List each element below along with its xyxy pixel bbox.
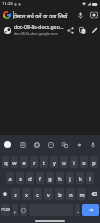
staticText: y: [53, 159, 56, 166]
staticText: o: [82, 159, 86, 166]
button[interactable]: x: [22, 188, 31, 200]
button[interactable]: w: [11, 156, 18, 168]
button[interactable]: m: [77, 188, 86, 200]
button[interactable]: Settings: [30, 135, 44, 154]
staticText: w: [12, 159, 17, 166]
button[interactable]: h: [56, 172, 64, 184]
button[interactable]: Stickers: [44, 135, 58, 154]
button[interactable]: i: [70, 156, 78, 168]
staticText: j: [69, 175, 71, 182]
staticText: e: [22, 159, 26, 166]
staticText: m: [79, 191, 85, 198]
button[interactable]: a: [6, 172, 14, 184]
staticText: ?123: [1, 207, 10, 213]
button[interactable]: y: [50, 156, 58, 168]
button[interactable]: Copy: [76, 24, 88, 36]
button[interactable]: Share: [64, 24, 76, 36]
button[interactable]: वेबपर सर्च करें या पता लिखें: [13, 8, 74, 22]
button[interactable]: Google Assistant: [0, 135, 15, 154]
button[interactable]: p: [90, 156, 98, 168]
button[interactable]: d: [26, 172, 34, 184]
button[interactable]: Edit: [88, 24, 100, 36]
staticText: n: [69, 191, 73, 198]
button[interactable]: Emoji: [20, 204, 27, 216]
staticText: b: [58, 191, 62, 198]
button[interactable]: Voice input: [86, 135, 100, 154]
button[interactable]: More options: [72, 135, 86, 154]
button[interactable]: Translate: [58, 135, 72, 154]
staticText: u: [62, 159, 66, 166]
staticText: .: [77, 207, 79, 214]
staticText: 11:23: [2, 1, 13, 7]
button[interactable]: c: [33, 188, 42, 200]
button[interactable]: k: [76, 172, 84, 184]
staticText: ,: [14, 207, 16, 214]
staticText: doc-08-8s-docs.google.com: [14, 31, 58, 36]
button[interactable]: Google Lens: [87, 8, 100, 22]
button[interactable]: z: [11, 188, 20, 200]
staticText: वेबपर सर्च करें या पता लिखें: [14, 12, 68, 19]
staticText: k: [79, 175, 82, 182]
button[interactable]: doc-08-8s-docs.goo...: [0, 22, 100, 38]
staticText: g: [48, 175, 52, 182]
button[interactable]: l: [86, 172, 94, 184]
staticText: t: [43, 159, 45, 166]
button[interactable]: .: [75, 204, 80, 216]
button[interactable]: Search: [82, 204, 99, 216]
button[interactable]: Backspace: [88, 188, 99, 200]
staticText: l: [89, 175, 91, 182]
staticText: d: [28, 175, 32, 182]
button[interactable]: n: [66, 188, 75, 200]
staticText: r: [33, 159, 36, 166]
button[interactable]: b: [55, 188, 64, 200]
button[interactable]: ?123: [1, 204, 10, 216]
staticText: p: [92, 159, 96, 166]
staticText: x: [25, 191, 28, 198]
staticText: f: [39, 175, 41, 182]
button[interactable]: q: [2, 156, 9, 168]
staticText: h: [58, 175, 62, 182]
button[interactable]: ,: [12, 204, 18, 216]
button[interactable]: f: [36, 172, 44, 184]
staticText: s: [19, 175, 22, 182]
button[interactable]: r: [30, 156, 38, 168]
button[interactable]: Shift: [1, 188, 9, 200]
button[interactable]: Clipboard: [15, 135, 30, 154]
button[interactable]: s: [16, 172, 24, 184]
staticText: v: [47, 191, 50, 198]
button[interactable]: e: [20, 156, 28, 168]
staticText: c: [36, 191, 39, 198]
button[interactable]: Google: [0, 8, 13, 22]
staticText: q: [4, 159, 8, 166]
button[interactable]: u: [60, 156, 68, 168]
button[interactable]: t: [40, 156, 48, 168]
staticText: doc-08-8s-docs.goo...: [14, 24, 64, 31]
button[interactable]: o: [80, 156, 88, 168]
staticText: z: [14, 191, 17, 198]
button[interactable]: g: [46, 172, 54, 184]
button[interactable]: v: [44, 188, 53, 200]
staticText: i: [73, 159, 75, 166]
staticText: a: [8, 175, 12, 182]
button[interactable]: j: [66, 172, 74, 184]
button[interactable]: Voice search: [74, 8, 87, 22]
